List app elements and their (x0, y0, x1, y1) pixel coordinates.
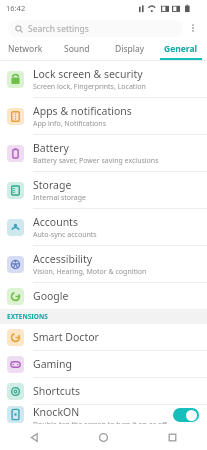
button[interactable]: Battery (0, 135, 207, 172)
staticText: Gaming (33, 357, 73, 371)
staticText: Screen lock, Fingerprints, Location (33, 82, 146, 92)
button[interactable]: Home (69, 424, 138, 450)
button[interactable]: Google (0, 283, 207, 309)
button[interactable]: Storage (0, 172, 207, 209)
staticText: Sound (64, 43, 90, 55)
button[interactable]: Gaming (0, 351, 207, 378)
button[interactable]: Lock screen & security (0, 61, 207, 98)
button[interactable]: KnockON toggle (173, 408, 199, 422)
staticText: Apps & notifications (33, 104, 132, 118)
staticText: App info, Notifications (33, 119, 107, 129)
staticText: Battery saver, Power saving exclusions (33, 156, 159, 166)
button[interactable]: Apps & notifications (0, 98, 207, 135)
staticText: Storage (33, 178, 72, 192)
staticText: Smart Doctor (33, 330, 99, 344)
staticText: Search settings (28, 23, 89, 35)
staticText: Accounts (33, 215, 78, 229)
staticText: Internal storage (33, 193, 86, 203)
button[interactable]: KnockON (0, 405, 207, 424)
staticText: Auto-sync accounts (33, 230, 97, 240)
staticText: Shortcuts (33, 384, 81, 398)
staticText: Double-tap the screen to turn it on or o… (33, 420, 167, 424)
staticText: KnockON (33, 405, 80, 419)
staticText: Display (115, 43, 144, 55)
staticText: 16:42 (6, 3, 26, 13)
button[interactable]: Sound (51, 40, 103, 60)
staticText: EXTENSIONS (7, 312, 48, 321)
button[interactable]: General (155, 40, 207, 60)
staticText: Lock screen & security (33, 67, 143, 81)
button[interactable]: More options (183, 18, 203, 38)
button[interactable]: Accessibility (0, 246, 207, 283)
staticText: General (164, 43, 198, 55)
button[interactable]: Display (103, 40, 155, 60)
button[interactable]: Recents (138, 424, 207, 450)
staticText: Network (8, 43, 43, 55)
button[interactable]: Shortcuts (0, 378, 207, 405)
button[interactable]: Network (0, 40, 51, 60)
staticText: Vision, Hearing, Motor & cognition (33, 267, 147, 277)
button[interactable]: Accounts (0, 209, 207, 246)
button[interactable]: Search settings (8, 20, 183, 37)
staticText: Battery (33, 141, 69, 155)
button[interactable]: Smart Doctor (0, 324, 207, 351)
staticText: Accessibility (33, 252, 93, 266)
staticText: Google (33, 289, 69, 303)
button[interactable]: Back (0, 424, 69, 450)
